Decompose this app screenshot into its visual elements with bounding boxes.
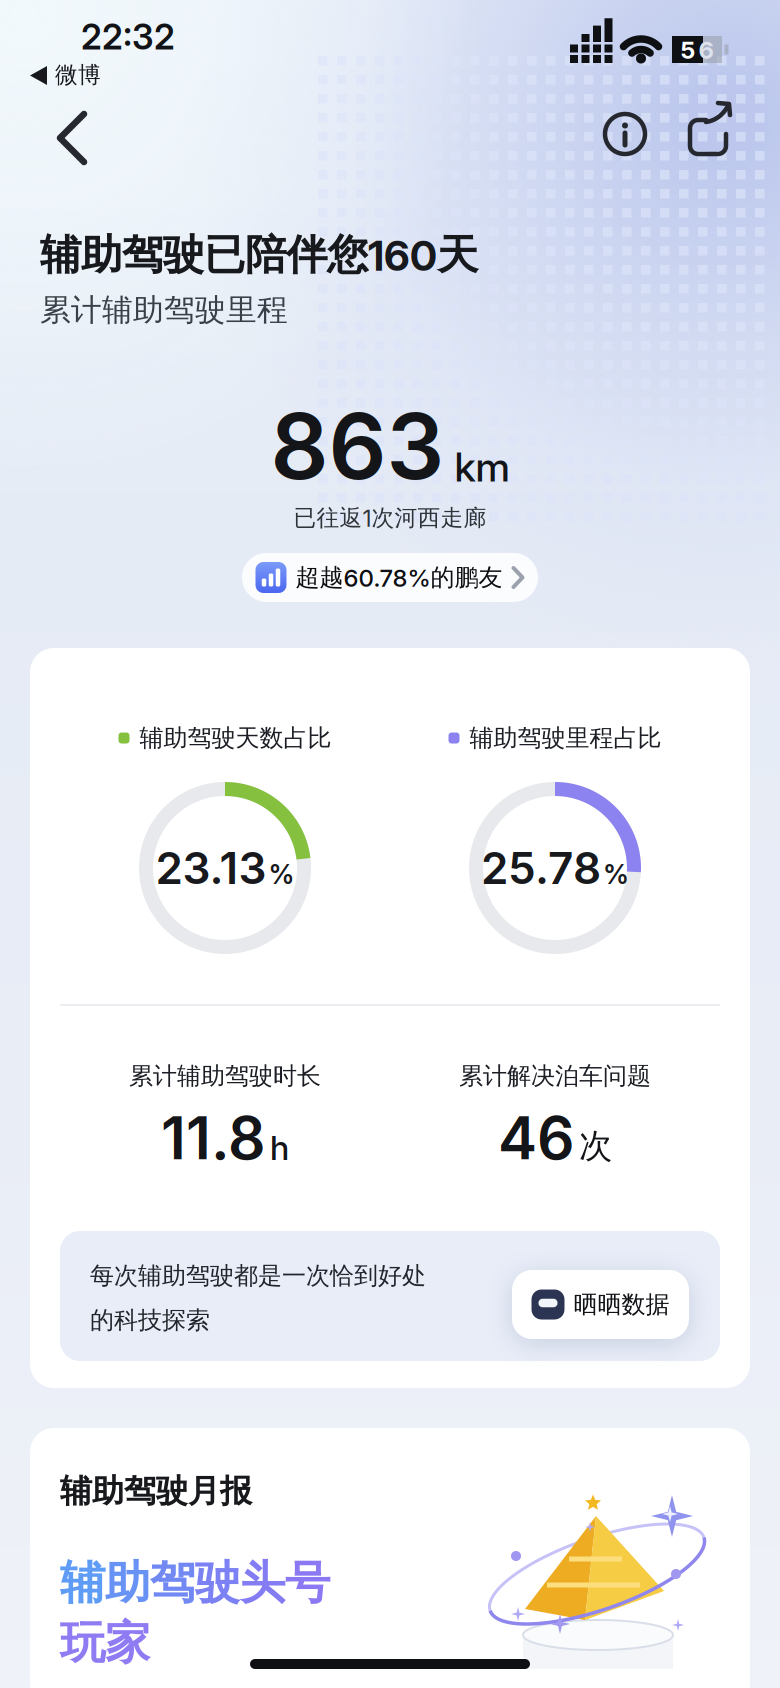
staticText: km (454, 443, 509, 490)
button[interactable]: Back (45, 105, 109, 171)
staticText: h (270, 1128, 289, 1168)
staticText: 累计辅助驾驶时长 (129, 1061, 321, 1091)
staticText: 23.13 (155, 842, 266, 894)
staticText: 辅助驾驶月报 (60, 1471, 252, 1511)
staticText: % (603, 858, 629, 890)
staticText: 863 (270, 392, 444, 499)
staticText: 玩家 (60, 1615, 150, 1671)
staticText: 11.8 (161, 1103, 266, 1173)
staticText: 助 (105, 1555, 150, 1611)
button[interactable]: Info (603, 112, 647, 156)
staticText: 超越60.78%的鹏友 (295, 563, 502, 592)
staticText: 微博 (55, 61, 101, 89)
staticText: 5 (680, 36, 695, 64)
staticText: 晒晒数据 (573, 1290, 669, 1319)
button[interactable]: 超越60.78%的鹏友 (242, 553, 538, 602)
staticText: 驾 (150, 1555, 195, 1611)
staticText: 辅助驾驶天数占比 (139, 723, 331, 753)
staticText: 25.78 (481, 842, 601, 894)
button[interactable]: 晒晒数据 (512, 1270, 689, 1339)
staticText: 号 (285, 1555, 330, 1611)
staticText: 6 (698, 36, 713, 64)
button[interactable]: Share (686, 100, 734, 156)
staticText: 已往返1次河西走廊 (293, 504, 486, 532)
staticText: % (268, 858, 294, 890)
staticText: 的科技探索 (90, 1305, 210, 1335)
staticText: 22:32 (81, 17, 175, 57)
staticText: 辅助驾驶已陪伴您160天 (40, 230, 478, 280)
staticText: 头 (240, 1555, 285, 1611)
staticText: 累计解决泊车问题 (459, 1061, 651, 1091)
staticText: 辅 (60, 1555, 105, 1611)
staticText: 驶 (195, 1555, 240, 1611)
staticText: 46 (498, 1103, 575, 1173)
staticText: 每次辅助驾驶都是一次恰到好处 (90, 1261, 426, 1290)
button[interactable]: 辅助驾驶月报 (30, 1428, 750, 1688)
staticText: 次 (579, 1126, 612, 1167)
staticText: 辅助驾驶里程占比 (469, 723, 661, 753)
staticText: 累计辅助驾驶里程 (40, 291, 288, 329)
